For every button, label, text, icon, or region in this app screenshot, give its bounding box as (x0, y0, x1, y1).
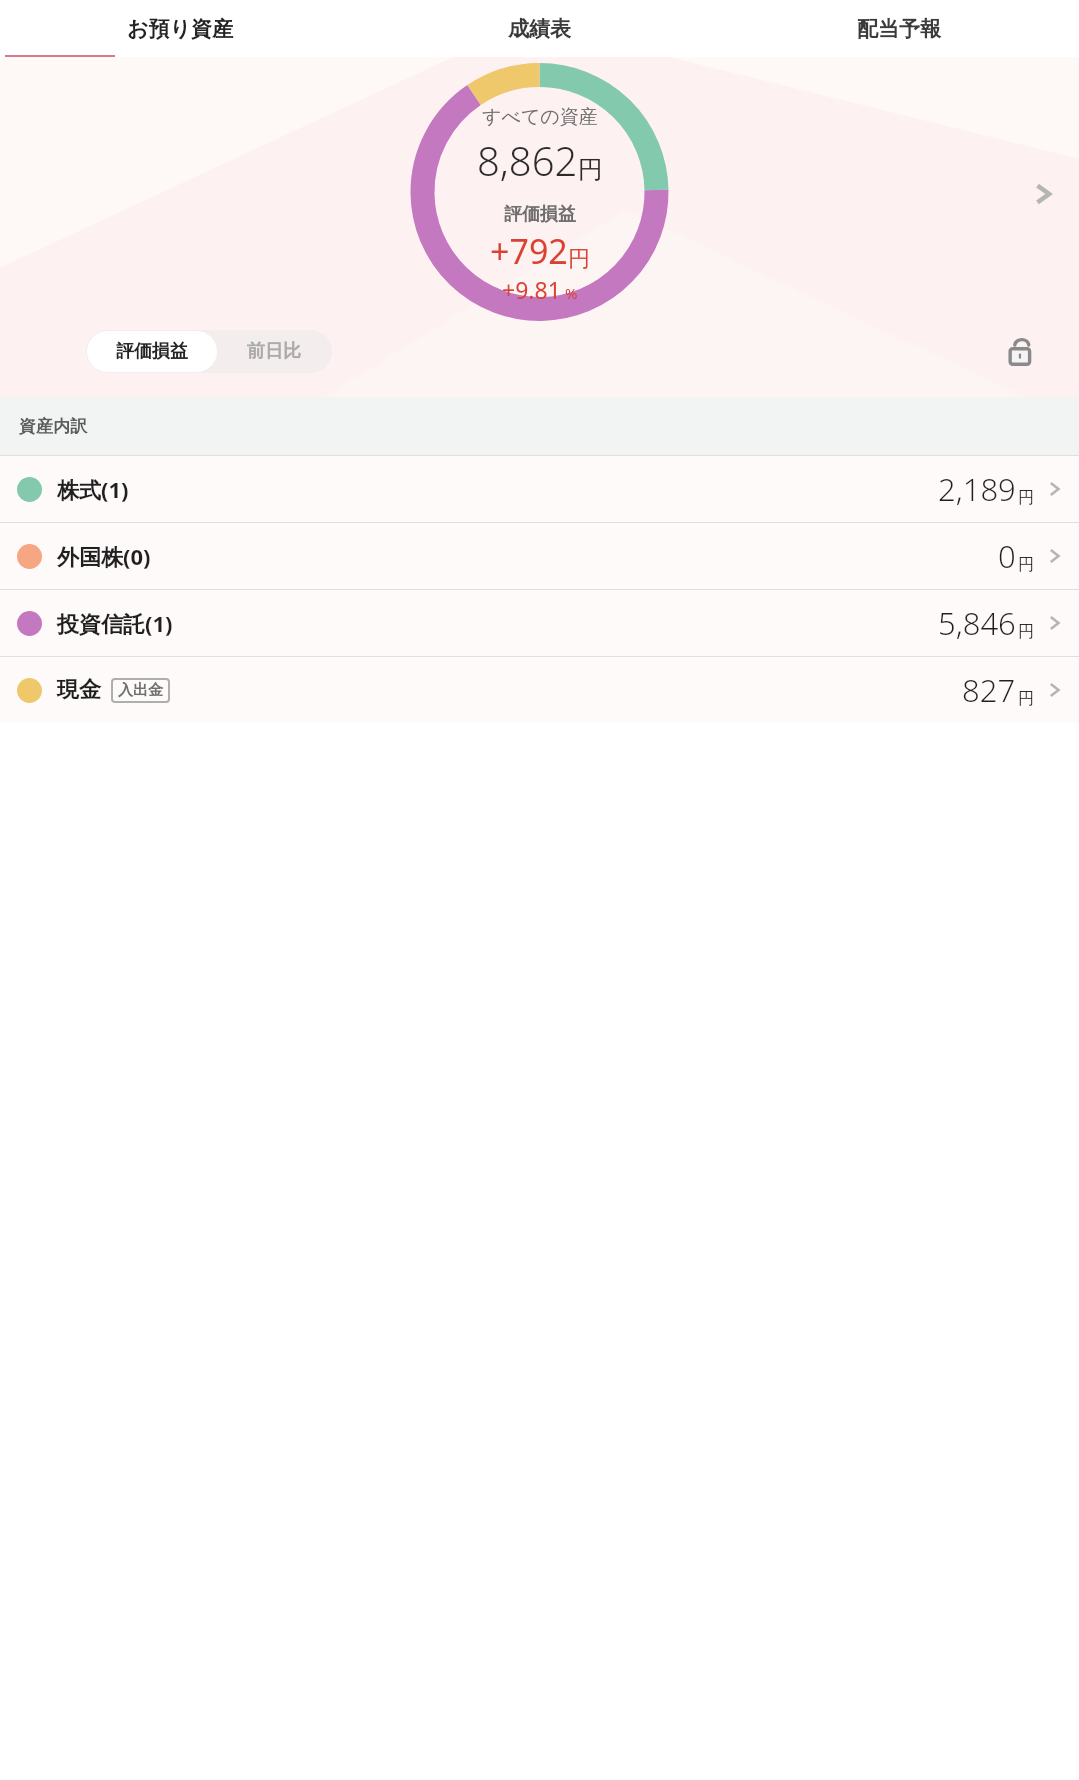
button[interactable]: 株式(1) (0, 456, 1079, 522)
staticText: 円 (1018, 622, 1034, 642)
staticText: 827 (962, 669, 1016, 711)
staticText: すべての資産 (482, 105, 598, 129)
staticText: 8,862 (477, 133, 578, 187)
staticText: % (561, 283, 578, 303)
staticText: 前日比 (247, 340, 301, 363)
button[interactable]: 評価損益 (87, 331, 217, 372)
staticText: 入出金 (118, 681, 163, 700)
button[interactable]: 配当予報 (719, 0, 1079, 57)
button[interactable]: 金額の表示切替 (997, 327, 1045, 375)
staticText: 成績表 (508, 16, 571, 42)
staticText: 株式(1) (57, 474, 129, 504)
staticText: お預り資産 (127, 16, 233, 42)
staticText: 資産内訳 (19, 416, 87, 437)
button[interactable]: 次の口座 (1021, 172, 1065, 216)
staticText: 2,189 (938, 468, 1016, 510)
button[interactable]: お預り資産 (0, 0, 359, 57)
button[interactable]: 前日比 (217, 331, 331, 372)
staticText: 円 (1018, 689, 1034, 709)
staticText: 評価損益 (504, 203, 576, 226)
button[interactable]: 外国株(0) (0, 523, 1079, 589)
staticText: 外国株(0) (57, 541, 151, 571)
staticText: 現金 (57, 676, 101, 704)
staticText: 5,846 (938, 602, 1016, 644)
staticText: 円 (568, 245, 590, 273)
staticText: 配当予報 (857, 16, 941, 42)
staticText: 円 (1018, 555, 1034, 575)
button[interactable]: 現金 (0, 657, 1079, 723)
staticText: +9.81 (502, 274, 561, 305)
staticText: 0 (998, 535, 1016, 577)
button[interactable]: 成績表 (359, 0, 719, 57)
staticText: 投資信託(1) (57, 608, 173, 638)
button[interactable]: 投資信託(1) (0, 590, 1079, 656)
staticText: +792 (490, 228, 568, 274)
staticText: 円 (578, 154, 603, 185)
staticText: 円 (1018, 488, 1034, 508)
staticText: 評価損益 (116, 340, 188, 363)
